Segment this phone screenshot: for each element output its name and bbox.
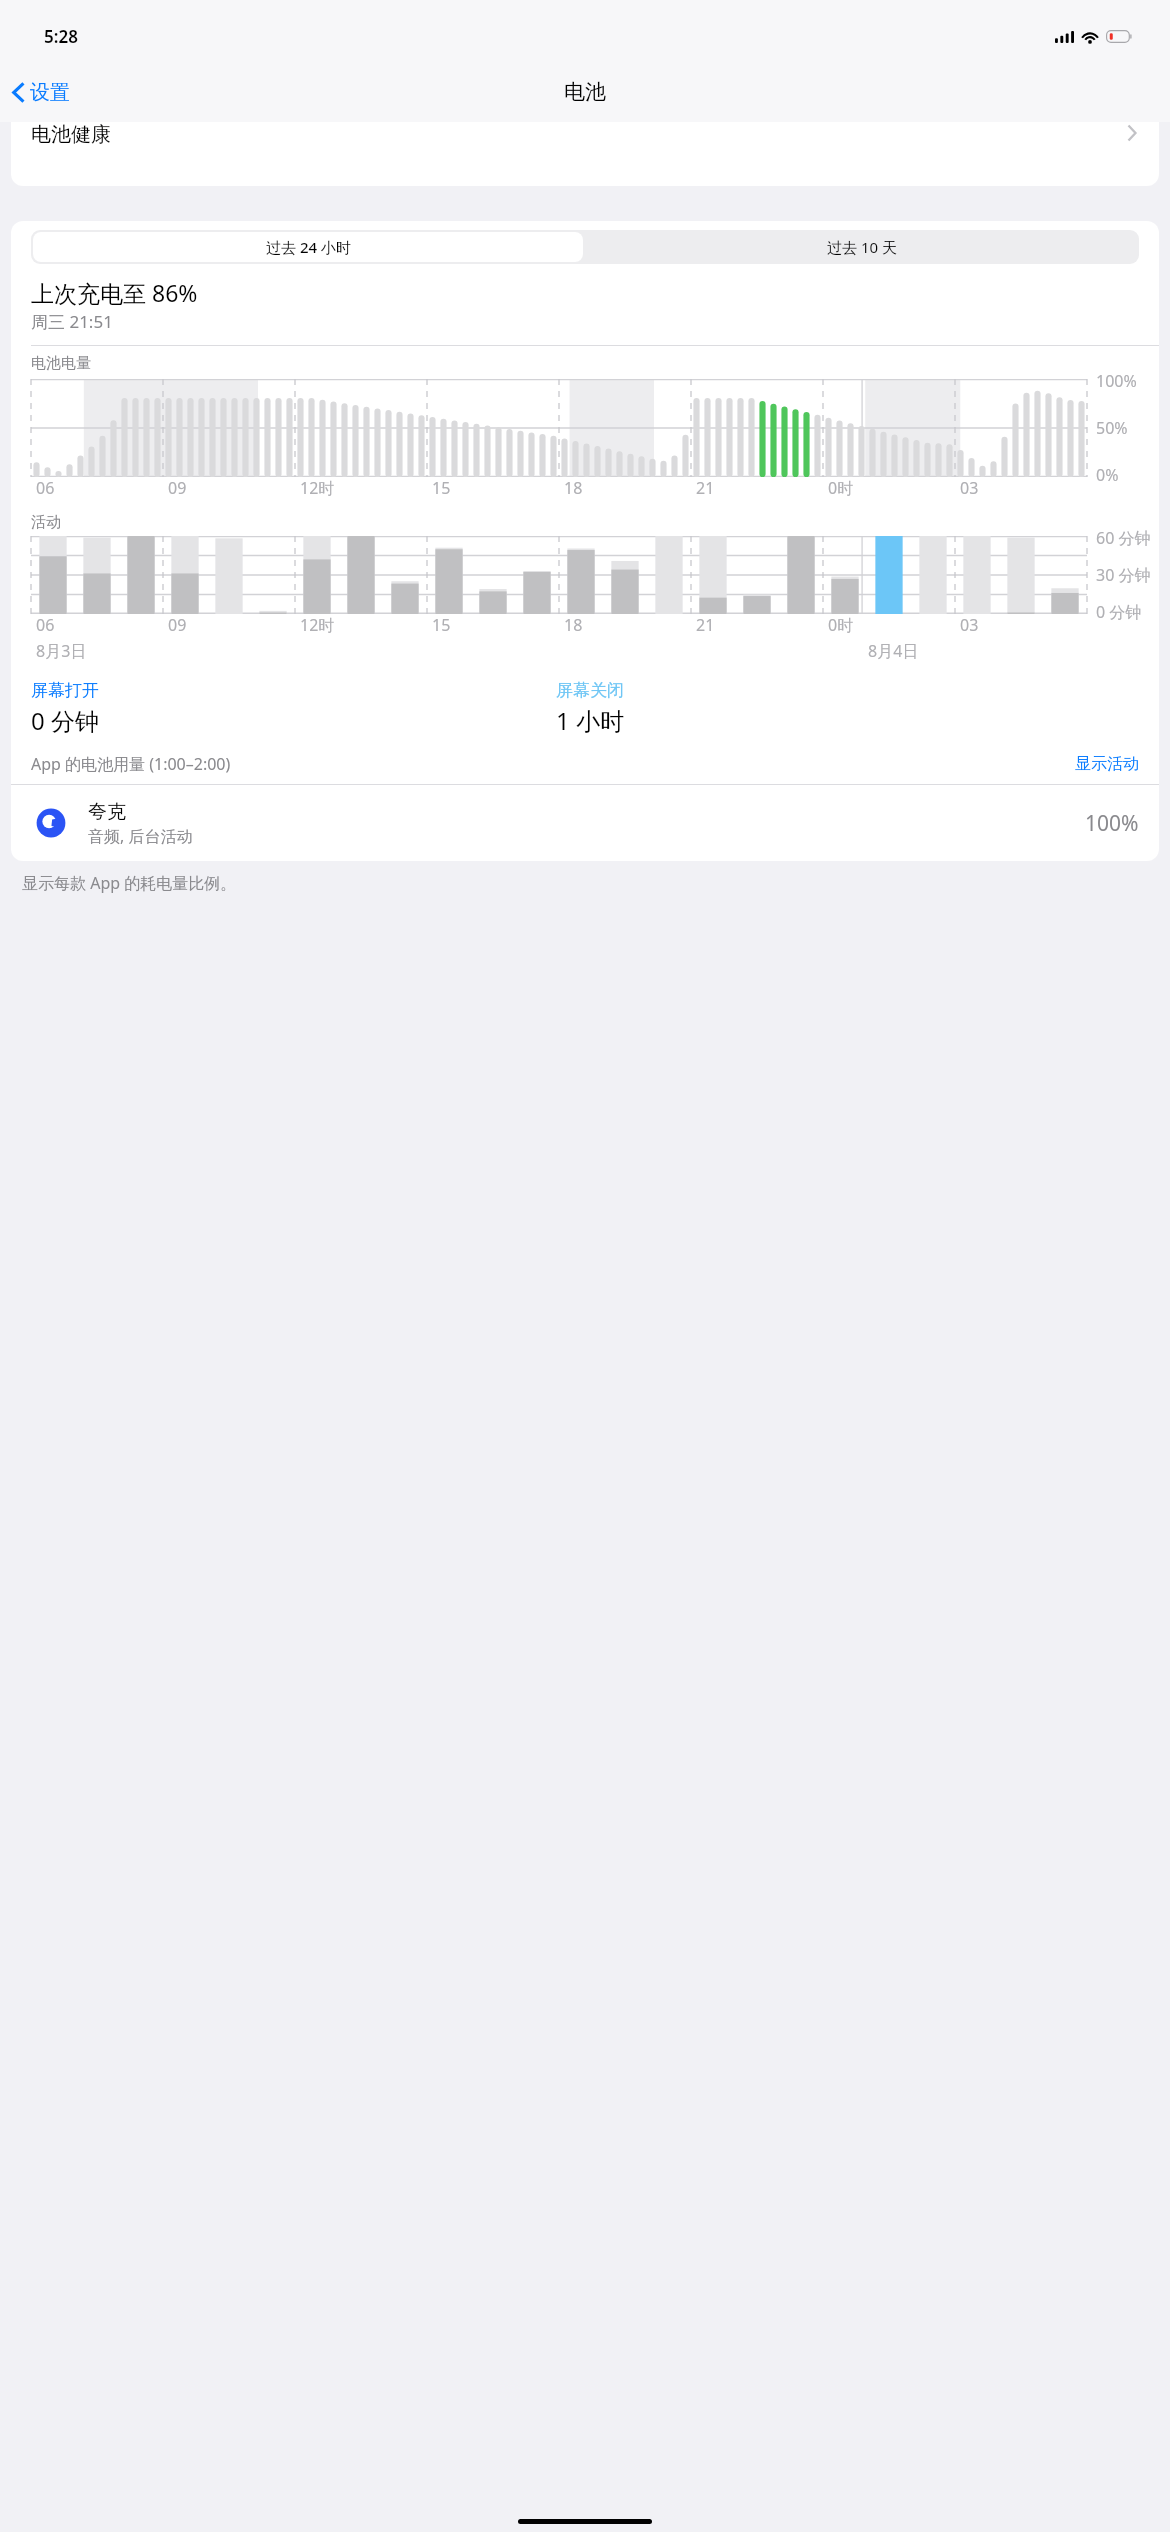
staticText: 周三 21:51 <box>31 310 113 333</box>
staticText: 03 <box>960 614 979 636</box>
staticText: 显示活动 <box>1075 754 1139 774</box>
staticText: 30 分钟 <box>1096 564 1151 586</box>
staticText: 50% <box>1096 417 1128 439</box>
button[interactable]: 显示活动 <box>1075 754 1139 774</box>
button[interactable]: 夸克 <box>11 785 1159 861</box>
staticText: 设置 <box>30 80 70 105</box>
staticText: 18 <box>564 477 583 499</box>
staticText: 12时 <box>300 614 335 636</box>
staticText: 03 <box>960 477 979 499</box>
staticText: 5:28 <box>44 25 78 48</box>
staticText: 上次充电至 86% <box>31 277 198 308</box>
staticText: 0 分钟 <box>1096 601 1142 623</box>
staticText: 09 <box>168 477 187 499</box>
staticText: 06 <box>36 614 55 636</box>
button[interactable]: 设置 <box>6 76 80 109</box>
staticText: 0% <box>1096 464 1119 486</box>
staticText: 0 分钟 <box>31 704 99 737</box>
staticText: 过去 24 小时 <box>266 237 351 257</box>
staticText: 电池电量 <box>31 354 91 373</box>
staticText: 100% <box>1085 809 1139 838</box>
staticText: 8月3日 <box>36 640 87 662</box>
staticText: 屏幕关闭 <box>556 680 624 701</box>
staticText: 60 分钟 <box>1096 527 1151 549</box>
button[interactable]: 过去 10 天 <box>585 230 1139 264</box>
staticText: App 的电池用量 (1:00–2:00) <box>31 753 1075 775</box>
staticText: 15 <box>432 477 451 499</box>
staticText: 12时 <box>300 477 335 499</box>
staticText: 夸克 <box>88 800 126 824</box>
staticText: 8月4日 <box>868 640 919 662</box>
staticText: 1 小时 <box>556 704 624 737</box>
staticText: 15 <box>432 614 451 636</box>
staticText: 活动 <box>31 513 61 532</box>
staticText: 18 <box>564 614 583 636</box>
staticText: 21 <box>696 477 715 499</box>
staticText: 显示每款 App 的耗电量比例。 <box>22 872 237 894</box>
staticText: 过去 10 天 <box>827 237 897 257</box>
staticText: 0时 <box>828 477 854 499</box>
other: 电池健康 <box>1127 124 1137 142</box>
staticText: 100% <box>1096 370 1137 392</box>
staticText: 06 <box>36 477 55 499</box>
staticText: 屏幕打开 <box>31 680 99 701</box>
staticText: 音频, 后台活动 <box>88 825 193 847</box>
staticText: 21 <box>696 614 715 636</box>
button[interactable]: 电池健康 <box>11 122 1159 186</box>
button[interactable]: 过去 24 小时 <box>33 232 583 262</box>
staticText: 电池 <box>564 79 606 105</box>
staticText: 09 <box>168 614 187 636</box>
staticText: 0时 <box>828 614 854 636</box>
staticText: 电池健康 <box>31 122 111 147</box>
